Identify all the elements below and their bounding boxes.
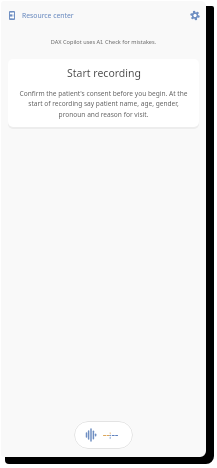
button[interactable]: Resource center [6, 8, 77, 23]
staticText: Confirm the patient's consent before you… [18, 89, 189, 119]
staticText: DAX Copilot uses AI. Check for mistakes. [1, 38, 206, 46]
button[interactable]: Start recording [74, 421, 133, 449]
staticText: Start recording [67, 66, 141, 80]
button[interactable]: Settings [187, 7, 203, 23]
staticText: Resource center [22, 11, 74, 20]
button[interactable]: Start recording [8, 59, 199, 127]
